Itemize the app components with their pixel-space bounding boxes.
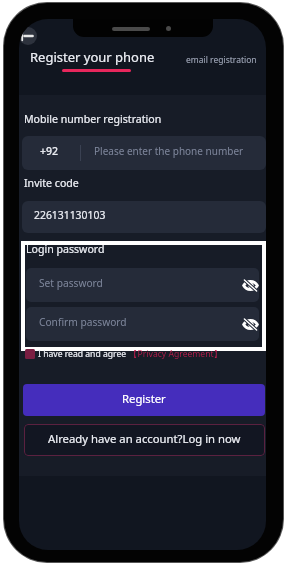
staticText: I have read and agree [38,348,127,360]
staticText: Mobile number registration [24,112,162,126]
button[interactable]: email registration [186,54,257,66]
button[interactable]: Agree checkbox [25,349,35,359]
button[interactable]: 【Privacy Agreement】 [129,348,223,360]
staticText: Set password [39,276,103,290]
staticText: email registration [186,54,257,66]
button[interactable]: +92 [22,136,80,170]
staticText: Invite code [24,176,79,190]
staticText: +92 [40,144,59,158]
staticText: 226131130103 [34,208,106,222]
button[interactable]: Already have an account?Log in now [24,424,265,456]
staticText: 【Privacy Agreement】 [129,348,223,360]
staticText: Register [122,391,166,406]
staticText: Please enter the phone number [94,144,244,158]
staticText: Login password [26,242,105,256]
staticText: Confirm password [39,315,127,329]
button[interactable]: Back [19,27,37,45]
button[interactable]: 226131130103 [22,201,266,233]
staticText: Already have an account?Log in now [48,431,241,446]
button[interactable]: Register [23,384,265,416]
button[interactable]: Toggle password visibility [235,309,259,339]
button[interactable]: Toggle password visibility [235,270,259,300]
staticText: Register your phone [30,48,155,66]
